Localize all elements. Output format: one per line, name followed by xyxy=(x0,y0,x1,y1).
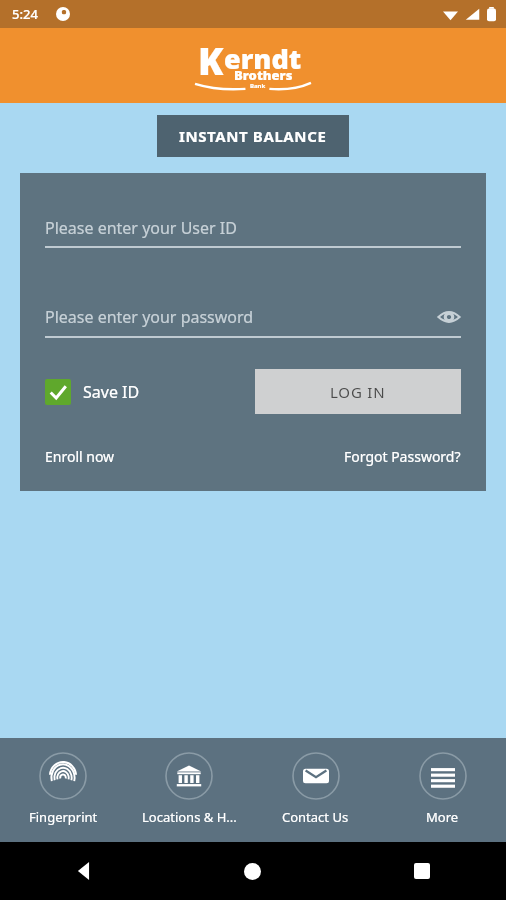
staticText: Enroll now xyxy=(45,447,115,466)
staticText: Fingerprint xyxy=(29,808,98,826)
staticText: LOG IN xyxy=(330,382,386,402)
staticText: Contact Us xyxy=(282,808,349,826)
button[interactable]: INSTANT BALANCE xyxy=(157,115,349,157)
staticText: Brothers xyxy=(234,66,293,84)
staticText: Please enter your User ID xyxy=(45,217,461,239)
staticText: Bank xyxy=(250,82,266,90)
button[interactable]: Save ID xyxy=(45,379,140,405)
staticText: Save ID xyxy=(83,381,140,403)
staticText: 5:24 xyxy=(12,5,38,23)
button[interactable]: Forgot Password? xyxy=(344,447,461,466)
button[interactable]: Contact Us xyxy=(252,738,379,842)
staticText: More xyxy=(426,808,459,826)
staticText: Locations & H... xyxy=(142,808,237,826)
button[interactable]: Fingerprint xyxy=(0,738,126,842)
button[interactable]: Recent apps xyxy=(337,842,506,900)
button[interactable]: LOG IN xyxy=(255,369,461,414)
button[interactable]: Enroll now xyxy=(45,447,115,466)
button[interactable]: More xyxy=(379,738,506,842)
button[interactable]: Home xyxy=(168,842,337,900)
staticText: Forgot Password? xyxy=(344,447,461,466)
button[interactable]: Back xyxy=(0,842,168,900)
staticText: erndt xyxy=(224,40,302,77)
staticText: Please enter your password xyxy=(45,306,437,328)
staticText: K xyxy=(198,35,224,85)
button[interactable]: Show password xyxy=(437,305,461,329)
button[interactable]: Locations & H... xyxy=(126,738,252,842)
staticText: INSTANT BALANCE xyxy=(179,126,327,146)
